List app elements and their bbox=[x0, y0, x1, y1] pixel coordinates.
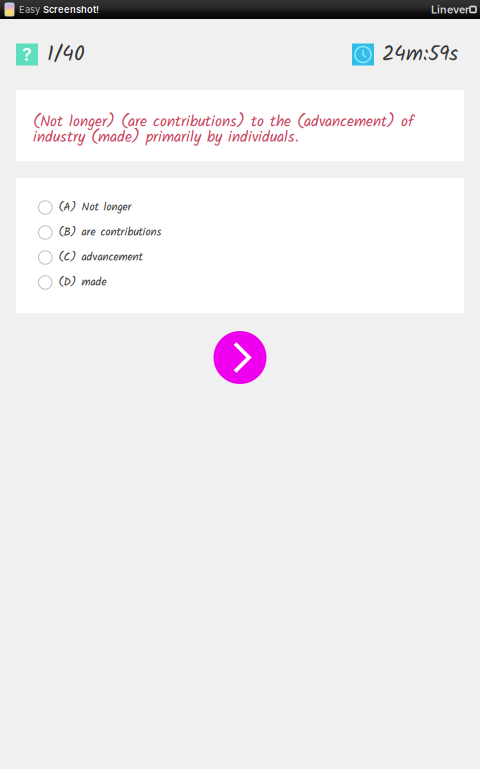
staticText: (C) advancement bbox=[58, 248, 142, 267]
staticText: 1/40 bbox=[47, 37, 85, 71]
button[interactable]: (A) Not longer bbox=[16, 195, 464, 220]
staticText: industry (made) primarily by individuals… bbox=[33, 125, 299, 150]
staticText: 24m:59s bbox=[382, 37, 458, 71]
staticText: ? bbox=[22, 44, 32, 65]
staticText: (A) Not longer bbox=[58, 198, 131, 217]
button[interactable]: (B) are contributions bbox=[16, 220, 464, 245]
button[interactable]: Next question bbox=[213, 331, 266, 384]
staticText: Linever bbox=[431, 3, 469, 16]
button[interactable]: (C) advancement bbox=[16, 245, 464, 270]
button[interactable]: (D) made bbox=[16, 270, 464, 295]
staticText: (Not longer) (are contributions) to the … bbox=[33, 110, 414, 134]
staticText: Screenshot! bbox=[43, 4, 99, 15]
staticText: (D) made bbox=[58, 273, 106, 292]
staticText: (B) are contributions bbox=[58, 223, 161, 242]
staticText: Easy bbox=[19, 4, 40, 15]
